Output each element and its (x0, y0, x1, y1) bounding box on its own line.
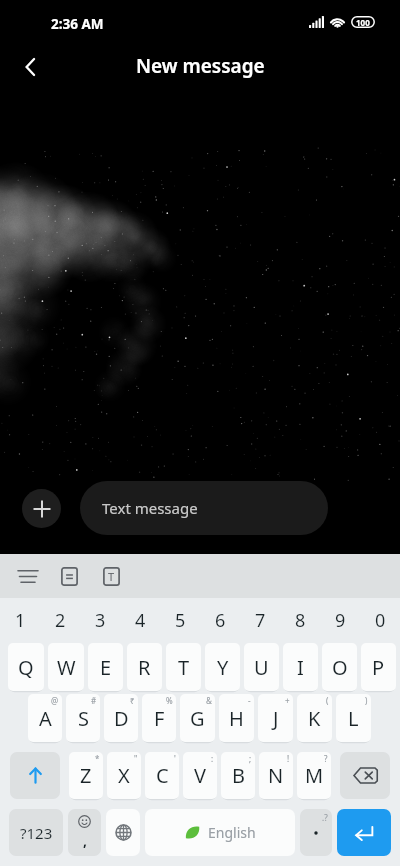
button[interactable]: ' (145, 752, 179, 799)
staticText: W (57, 654, 76, 681)
staticText: H (229, 705, 244, 732)
button[interactable]: ! (259, 752, 293, 799)
button[interactable]: & (180, 694, 215, 742)
button[interactable]: ?123 (9, 809, 63, 856)
staticText: G (190, 705, 205, 732)
button[interactable]: R (127, 643, 162, 691)
button[interactable]: 2 (40, 598, 80, 642)
staticText: ( (326, 695, 329, 706)
button[interactable]: 9 (320, 598, 360, 642)
button[interactable]: ; (221, 752, 255, 799)
staticText: 1 (15, 608, 26, 633)
staticText: English (208, 823, 256, 842)
button[interactable]: @ (28, 694, 62, 742)
button[interactable]: Shift (10, 752, 60, 799)
staticText: X (118, 762, 130, 789)
staticText: P (372, 654, 385, 681)
button[interactable]: ( (297, 694, 332, 742)
staticText: K (308, 705, 321, 732)
staticText: , (83, 831, 87, 850)
staticText: ' (174, 753, 176, 764)
button[interactable]: + (258, 694, 293, 742)
button[interactable]: Change language (106, 809, 140, 856)
staticText: ? (324, 753, 328, 764)
button[interactable]: 7 (240, 598, 280, 642)
staticText: 3 (95, 608, 106, 633)
staticText: J (273, 705, 279, 732)
button[interactable]: Keyboard menu (12, 561, 44, 591)
button[interactable]: % (142, 694, 176, 742)
button[interactable]: T (166, 643, 201, 691)
staticText: U (254, 654, 269, 681)
button[interactable]: ) (336, 694, 371, 742)
button[interactable]: Text message (80, 481, 328, 535)
staticText: I (297, 654, 304, 681)
button[interactable]: E (88, 643, 123, 691)
button[interactable]: Send (337, 809, 391, 856)
button[interactable]: 3 (80, 598, 120, 642)
button[interactable]: Back (8, 44, 54, 90)
staticText: N (268, 762, 284, 789)
staticText: O (332, 654, 348, 681)
staticText: M (305, 762, 324, 789)
button[interactable]: U (244, 643, 279, 691)
staticText: @ (51, 695, 59, 706)
button[interactable]: 8 (280, 598, 320, 642)
staticText: ; (249, 753, 252, 764)
staticText: # (91, 695, 97, 706)
button[interactable]: Emoji (68, 809, 101, 856)
button[interactable]: 4 (120, 598, 160, 642)
staticText: Y (217, 654, 229, 681)
staticText: 9 (335, 608, 346, 633)
staticText: New message (136, 53, 265, 79)
staticText: T (178, 654, 190, 681)
staticText: + (285, 695, 290, 706)
button[interactable]: W (48, 643, 84, 691)
button[interactable]: ? (297, 752, 331, 799)
button[interactable]: 0 (360, 598, 400, 642)
staticText: ) (365, 695, 368, 706)
staticText: B (232, 762, 245, 789)
button[interactable]: * (69, 752, 103, 799)
staticText: ?123 (20, 823, 53, 843)
staticText: % (166, 695, 173, 706)
staticText: V (194, 762, 206, 789)
button[interactable]: 6 (200, 598, 240, 642)
staticText: T (108, 569, 115, 584)
staticText: 100 (356, 17, 370, 28)
button[interactable]: Clipboard (53, 561, 85, 591)
staticText: : (211, 753, 214, 764)
button[interactable]: Add attachment (22, 489, 61, 528)
staticText: 7 (255, 608, 266, 633)
button[interactable]: O (322, 643, 357, 691)
button[interactable]: ₹ (104, 694, 138, 742)
button[interactable]: I (283, 643, 318, 691)
button[interactable]: P (361, 643, 396, 691)
button[interactable]: # (66, 694, 100, 742)
button[interactable]: 5 (160, 598, 200, 642)
button[interactable]: - (219, 694, 254, 742)
staticText: D (114, 705, 129, 732)
button[interactable]: 1 (0, 598, 40, 642)
staticText: S (78, 705, 89, 732)
staticText: & (206, 695, 212, 706)
button[interactable]: : (183, 752, 217, 799)
staticText: 2:36 AM (51, 15, 104, 33)
staticText: 8 (295, 608, 306, 633)
staticText: ! (287, 753, 290, 764)
button[interactable]: Backspace (340, 752, 390, 799)
staticText: E (100, 654, 112, 681)
staticText: 0 (375, 608, 386, 633)
button[interactable]: English (145, 809, 295, 856)
button[interactable]: Y (205, 643, 240, 691)
staticText: 6 (215, 608, 226, 633)
button[interactable]: Q (8, 643, 44, 691)
staticText: L (348, 705, 359, 732)
button[interactable]: Period (300, 809, 332, 856)
staticText: Z (80, 762, 92, 789)
staticText: Text message (102, 498, 198, 518)
staticText: A (39, 705, 52, 732)
button[interactable]: " (107, 752, 141, 799)
button[interactable]: Text editing (95, 561, 127, 591)
staticText: " (134, 753, 138, 764)
